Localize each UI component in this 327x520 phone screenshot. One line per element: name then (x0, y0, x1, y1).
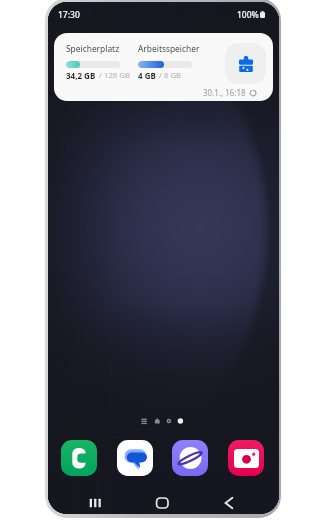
staticText: 30.1., 16:18 (203, 87, 246, 98)
button[interactable]: Phone (61, 440, 97, 476)
button[interactable]: Messages (117, 440, 153, 476)
button[interactable]: Back (202, 491, 279, 514)
button[interactable]: Internet (172, 440, 208, 476)
staticText: Speicherplatz (66, 43, 120, 54)
button[interactable]: Clean memory (225, 43, 266, 84)
staticText: / 8 GB (159, 70, 182, 81)
button[interactable]: Home (125, 491, 202, 514)
staticText: 34,2 GB (66, 70, 96, 81)
staticText: / 128 GB (99, 70, 131, 81)
button[interactable]: Recent apps (48, 491, 125, 514)
staticText: Arbeitsspeicher (138, 43, 200, 54)
staticText: 100% (237, 9, 259, 21)
staticText: 4 GB (138, 70, 156, 81)
button[interactable]: Camera (228, 440, 264, 476)
staticText: 17:30 (58, 9, 80, 21)
other: Refresh (249, 89, 257, 97)
button[interactable]: Speicherplatz (54, 33, 273, 101)
